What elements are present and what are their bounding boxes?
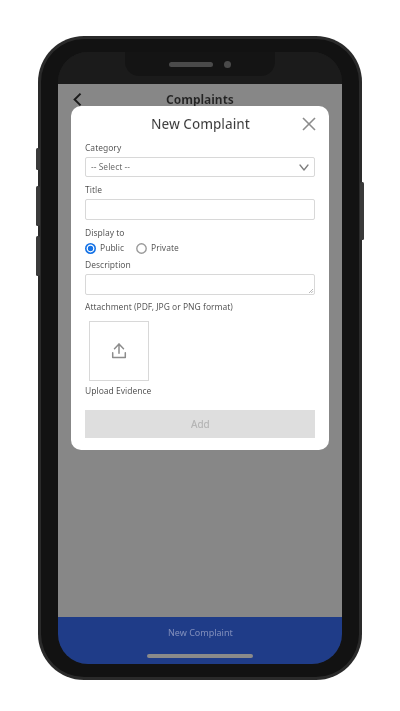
button[interactable]: Upload Evidence — [89, 321, 149, 381]
button[interactable]: Back — [64, 86, 90, 112]
staticText: Public — [100, 242, 125, 254]
button[interactable]: Add — [85, 410, 315, 438]
staticText: Category — [85, 142, 122, 154]
staticText: Private — [151, 242, 179, 254]
staticText: New Complaint — [151, 115, 250, 133]
staticText: New Complaint — [168, 626, 233, 638]
button[interactable]: -- Select -- — [85, 157, 315, 177]
staticText: Complaints — [166, 91, 234, 107]
staticText: Attachment (PDF, JPG or PNG format) — [85, 301, 233, 313]
button[interactable]: New Complaint — [58, 617, 342, 647]
button[interactable]: Private — [136, 242, 179, 254]
staticText: Description — [85, 259, 131, 271]
button[interactable] — [85, 274, 315, 295]
staticText: Add — [191, 417, 210, 431]
staticText: Upload Evidence — [85, 385, 152, 397]
button[interactable]: Public — [85, 242, 127, 254]
staticText: Display to — [85, 227, 125, 239]
staticText: -- Select -- — [91, 161, 130, 173]
button[interactable] — [85, 199, 315, 220]
staticText: Title — [85, 184, 102, 196]
button[interactable]: Close — [298, 113, 320, 135]
